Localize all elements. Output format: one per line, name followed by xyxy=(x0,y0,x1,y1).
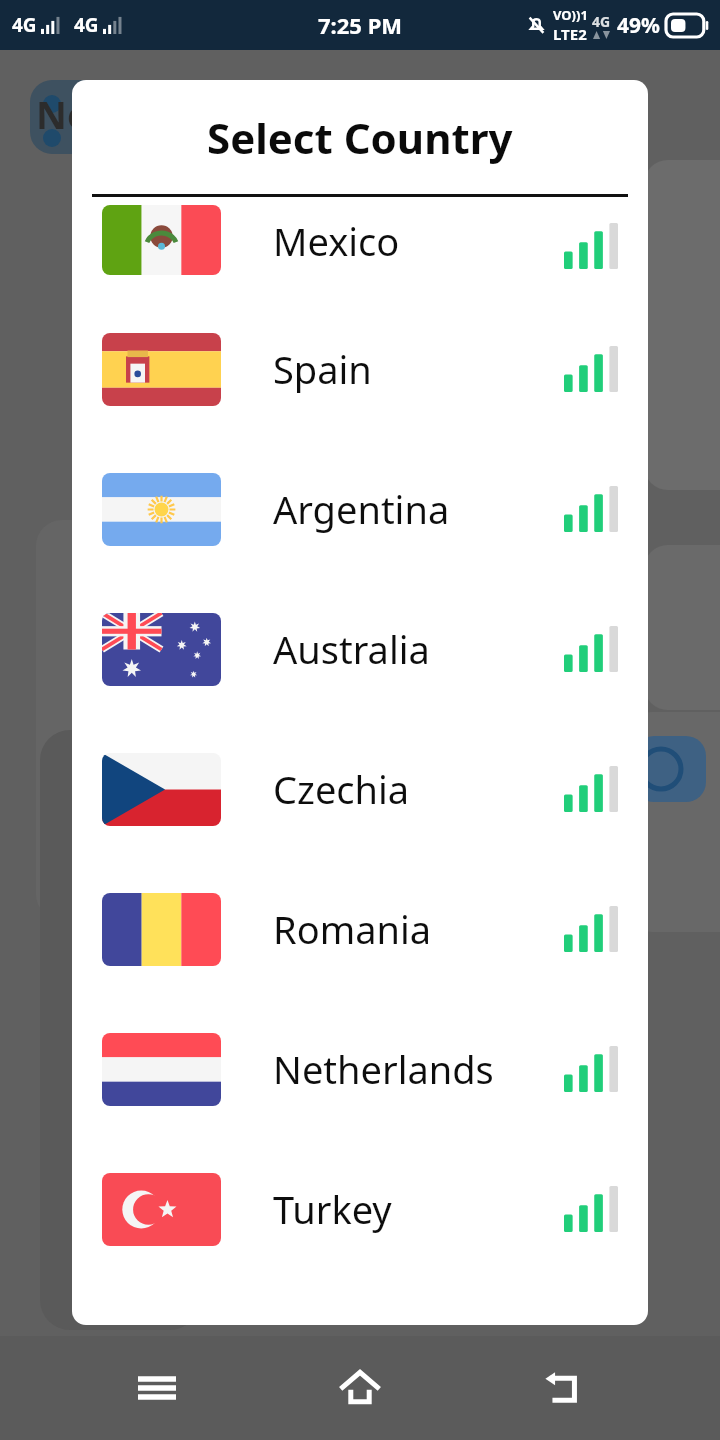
staticText: Romania xyxy=(273,903,432,955)
staticText: LTE2 xyxy=(553,24,587,44)
button[interactable]: Australia xyxy=(82,585,638,713)
button[interactable]: Spain xyxy=(82,305,638,433)
staticText: Ne xyxy=(36,88,90,140)
staticText: Australia xyxy=(273,623,430,675)
button[interactable]: Romania xyxy=(82,865,638,993)
button[interactable]: Argentina xyxy=(82,445,638,573)
button[interactable]: Back xyxy=(517,1342,609,1434)
staticText: Netherlands xyxy=(273,1043,494,1095)
staticText: VO))1 xyxy=(553,6,588,24)
staticText: Czechia xyxy=(273,763,410,815)
staticText: 49% xyxy=(617,11,660,40)
button[interactable]: Mexico xyxy=(82,205,638,293)
staticText: 4G xyxy=(12,12,37,38)
button[interactable]: Turkey xyxy=(82,1145,638,1273)
button[interactable]: Netherlands xyxy=(82,1005,638,1133)
staticText: Select Country xyxy=(207,109,513,166)
button[interactable]: Czechia xyxy=(82,725,638,853)
staticText: 7:25 PM xyxy=(318,10,403,40)
staticText: 4G xyxy=(74,12,99,38)
staticText: Turkey xyxy=(273,1183,392,1235)
button[interactable]: Home xyxy=(314,1342,406,1434)
staticText: 4G xyxy=(592,12,611,31)
staticText: Argentina xyxy=(273,483,450,535)
staticText: Mexico xyxy=(273,215,400,267)
staticText: Spain xyxy=(273,343,372,395)
button[interactable]: Recent apps xyxy=(111,1342,203,1434)
